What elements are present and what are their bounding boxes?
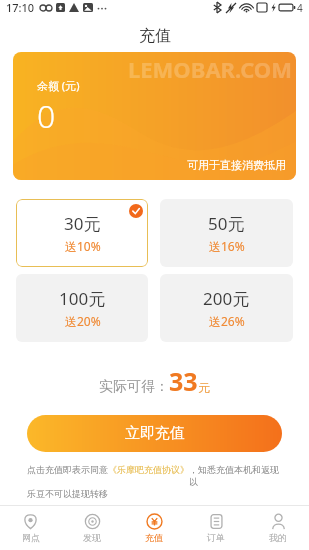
staticText: 订单 [207, 532, 225, 543]
staticText: 实际可得： [99, 378, 169, 396]
staticText: 可用于直接消费抵用 [187, 158, 286, 172]
button[interactable]: 50元 [160, 199, 293, 267]
staticText: 充值 [139, 26, 171, 46]
staticText: LEMOBAR.COM [128, 54, 292, 84]
button[interactable]: 30元 [16, 199, 148, 267]
button[interactable]: 100元 [16, 274, 148, 342]
button[interactable]: 网点 [0, 513, 61, 543]
staticText: 发现 [83, 532, 101, 543]
staticText: 50元 [208, 212, 245, 235]
staticText: 送20% [65, 313, 101, 329]
staticText: 4 [297, 1, 303, 15]
staticText: 33 [169, 364, 198, 398]
staticText: 送16% [209, 238, 245, 254]
staticText: 点击充值即表示同意 [27, 464, 108, 475]
staticText: 元 [198, 380, 210, 395]
staticText: 30元 [64, 212, 101, 235]
button[interactable]: 充值 [123, 513, 185, 543]
staticText: 立即充值 [125, 424, 185, 443]
button[interactable]: 订单 [185, 513, 247, 543]
staticText: 充值 [145, 532, 163, 543]
button[interactable]: 200元 [160, 274, 293, 342]
staticText: 17:10 [6, 0, 35, 15]
staticText: ，知悉充值本机和返现以 [189, 464, 282, 488]
button[interactable]: 《乐摩吧充值协议》 [108, 464, 189, 475]
staticText: 余额 (元) [37, 78, 80, 93]
staticText: 网点 [22, 532, 40, 543]
staticText: 我的 [269, 532, 287, 543]
staticText: 送26% [209, 313, 245, 329]
button[interactable]: 立即充值 [27, 415, 282, 452]
staticText: 0 [37, 94, 56, 138]
staticText: 乐豆不可以提现转移 [27, 488, 108, 499]
button[interactable]: 我的 [247, 513, 309, 543]
staticText: 送10% [65, 238, 101, 254]
staticText: 100元 [59, 287, 106, 310]
button[interactable]: LEMOBAR.COM [13, 52, 296, 180]
button[interactable]: 发现 [61, 513, 123, 543]
staticText: 200元 [203, 287, 250, 310]
